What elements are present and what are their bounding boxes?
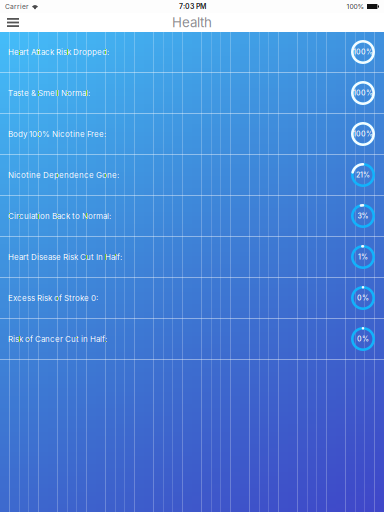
staticText: 21% xyxy=(356,171,370,179)
staticText: Risk of Cancer Cut in Half: xyxy=(8,334,107,344)
staticText: 0% xyxy=(357,335,369,343)
button[interactable]: Risk of Cancer Cut in Half: xyxy=(0,319,384,360)
button[interactable]: Heart Attack Risk Dropped: xyxy=(0,32,384,73)
staticText: Heart Attack Risk Dropped: xyxy=(8,47,109,57)
staticText: Health xyxy=(172,14,212,30)
staticText: Excess Risk of Stroke 0: xyxy=(8,293,98,303)
staticText: 3% xyxy=(357,212,368,220)
button[interactable]: Menu xyxy=(0,12,26,32)
button[interactable]: Taste & Smell Normal: xyxy=(0,73,384,114)
staticText: 100% xyxy=(353,130,373,138)
staticText: Carrier xyxy=(5,2,29,11)
staticText: Circulation Back to Normal: xyxy=(8,211,111,221)
staticText: Heart Disease Risk Cut In Half: xyxy=(8,252,122,262)
button[interactable]: Circulation Back to Normal: xyxy=(0,196,384,237)
staticText: 100% xyxy=(346,2,364,11)
staticText: 7:03 PM xyxy=(179,2,206,11)
staticText: 1% xyxy=(358,253,368,261)
button[interactable]: Nicotine Dependence Gone: xyxy=(0,155,384,196)
staticText: 0% xyxy=(357,294,369,302)
staticText: 100% xyxy=(353,48,373,56)
button[interactable]: Heart Disease Risk Cut In Half: xyxy=(0,237,384,278)
staticText: Body 100% Nicotine Free: xyxy=(8,129,106,139)
staticText: Taste & Smell Normal: xyxy=(8,88,90,98)
button[interactable]: Body 100% Nicotine Free: xyxy=(0,114,384,155)
staticText: Nicotine Dependence Gone: xyxy=(8,170,119,180)
button[interactable]: Excess Risk of Stroke 0: xyxy=(0,278,384,319)
staticText: 100% xyxy=(353,89,373,97)
